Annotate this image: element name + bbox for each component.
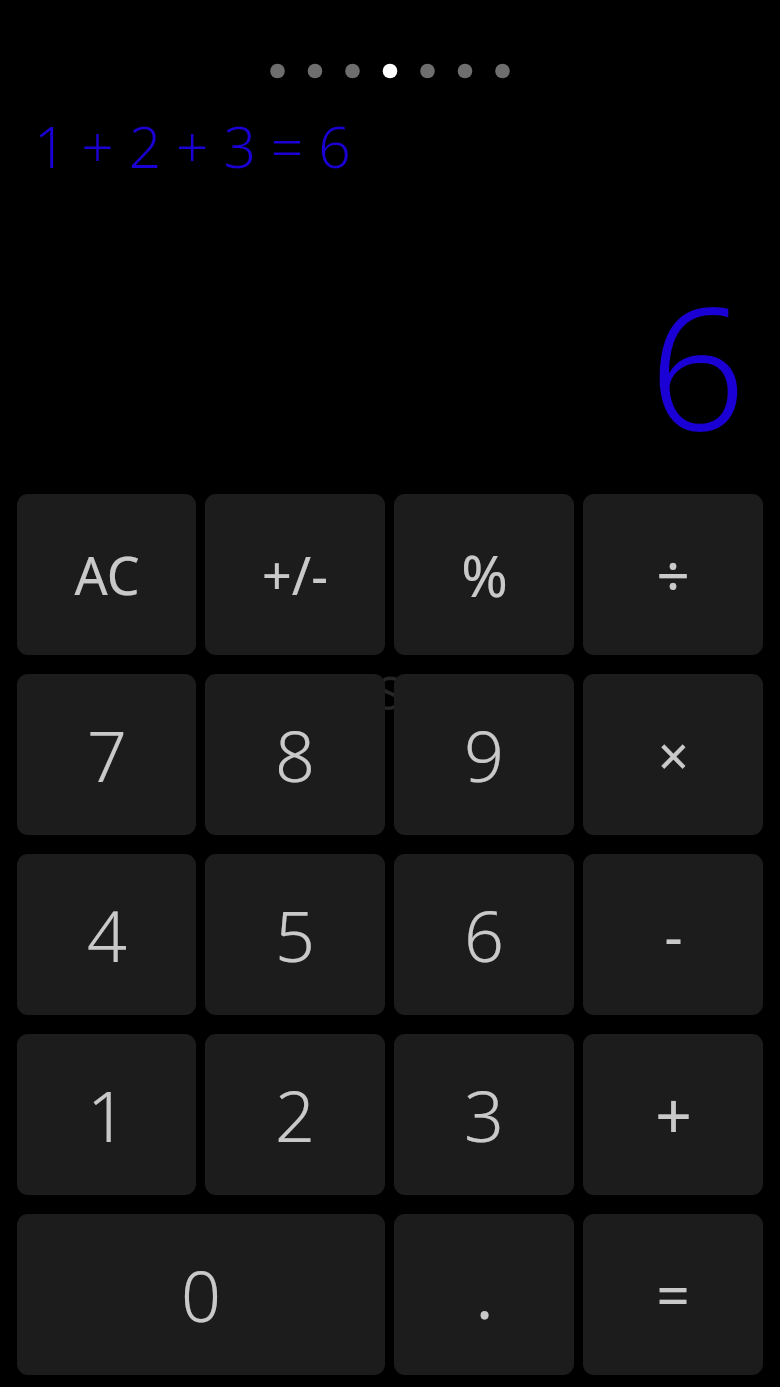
staticText: 5 <box>275 887 315 982</box>
button[interactable]: AC <box>17 494 196 655</box>
button[interactable]: 9 <box>394 674 574 835</box>
button[interactable]: 8 <box>205 674 385 835</box>
staticText: % <box>461 537 508 613</box>
button[interactable]: 4 <box>17 854 196 1015</box>
staticText: 1 <box>87 1067 127 1162</box>
staticText: 0 <box>181 1247 221 1342</box>
staticText: 6 <box>648 248 746 480</box>
button[interactable]: Equals <box>583 1214 763 1375</box>
staticText: 4 <box>87 887 127 982</box>
staticText: . <box>476 1253 493 1337</box>
button[interactable]: Minus <box>583 854 763 1015</box>
button[interactable]: Decimal point <box>394 1214 574 1375</box>
staticText: 3 <box>464 1067 504 1162</box>
staticText: 6 <box>464 887 504 982</box>
button[interactable]: 6 <box>394 854 574 1015</box>
staticText: +/- <box>262 539 328 610</box>
button[interactable]: Plus <box>583 1034 763 1195</box>
button[interactable]: 1 <box>17 1034 196 1195</box>
staticText: × <box>658 718 689 792</box>
staticText: 7 <box>87 707 127 802</box>
staticText: - <box>664 897 683 973</box>
button[interactable]: 7 <box>17 674 196 835</box>
staticText: 9 <box>464 707 504 802</box>
button[interactable]: Multiply <box>583 674 763 835</box>
staticText: ÷ <box>656 535 690 614</box>
staticText: + <box>655 1071 692 1158</box>
staticText: 1 + 2 + 3 = 6 <box>34 107 351 185</box>
staticText: UpdateStar.com <box>222 662 558 723</box>
button[interactable]: 2 <box>205 1034 385 1195</box>
button[interactable]: Percent <box>394 494 574 655</box>
staticText: = <box>656 1255 690 1334</box>
button[interactable]: 5 <box>205 854 385 1015</box>
staticText: 8 <box>275 707 315 802</box>
button[interactable]: Plus minus sign toggle <box>205 494 385 655</box>
staticText: AC <box>74 539 140 610</box>
button[interactable]: 0 <box>17 1214 385 1375</box>
button[interactable]: 3 <box>394 1034 574 1195</box>
button[interactable]: Divide <box>583 494 763 655</box>
staticText: 2 <box>275 1067 315 1162</box>
